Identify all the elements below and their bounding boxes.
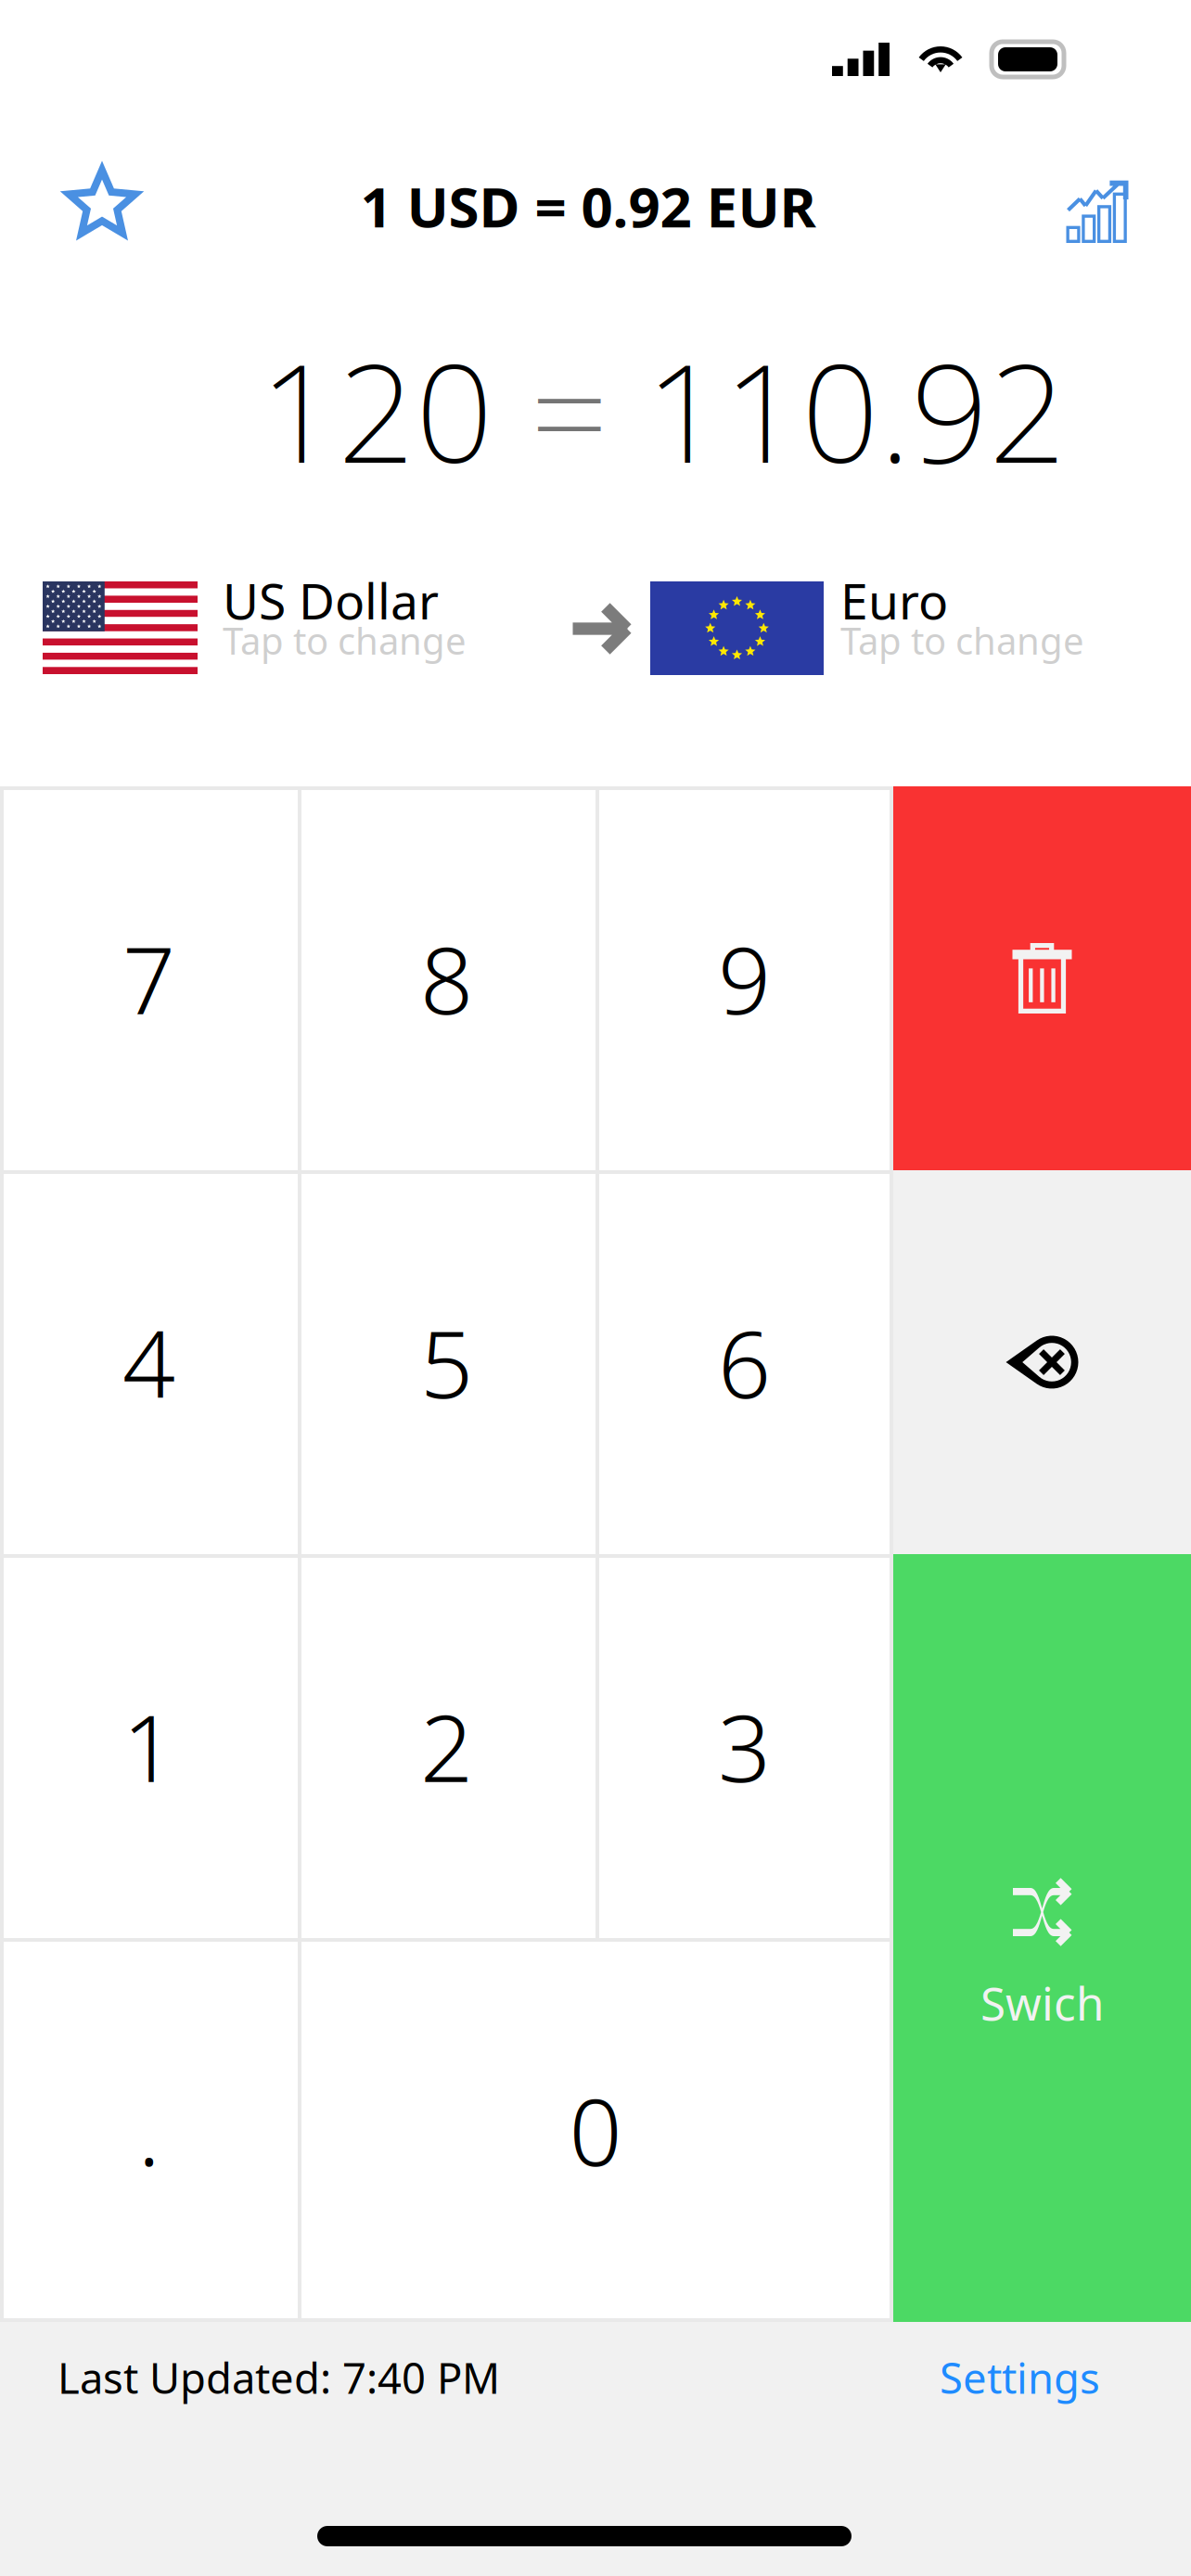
button[interactable]: 9 bbox=[595, 786, 893, 1170]
staticText: 2 bbox=[420, 1685, 473, 1808]
staticText: Swich bbox=[980, 1972, 1104, 2033]
staticText: 0 bbox=[569, 2068, 622, 2192]
staticText: 5 bbox=[420, 1301, 473, 1424]
staticText: Euro bbox=[840, 567, 948, 633]
button[interactable]: 7 bbox=[0, 786, 298, 1170]
staticText: 7 bbox=[122, 917, 175, 1040]
button[interactable]: Favourite bbox=[32, 134, 172, 275]
button[interactable]: 1 bbox=[0, 1554, 298, 1938]
button[interactable]: 4 bbox=[0, 1170, 298, 1554]
button[interactable]: . bbox=[0, 1938, 298, 2322]
button[interactable]: 0 bbox=[298, 1938, 893, 2322]
staticText: 8 bbox=[420, 917, 473, 1040]
button[interactable]: Euro bbox=[634, 549, 1175, 707]
staticText: . bbox=[138, 2068, 160, 2192]
staticText: 110.92 bbox=[646, 320, 1067, 500]
staticText: Tap to change bbox=[840, 616, 1084, 665]
button[interactable]: 6 bbox=[595, 1170, 893, 1554]
staticText: 120 bbox=[260, 320, 493, 500]
button[interactable]: 2 bbox=[298, 1554, 595, 1938]
staticText: Last Updated: 7:40 PM bbox=[58, 2350, 500, 2405]
button[interactable]: 3 bbox=[595, 1554, 893, 1938]
button[interactable]: US Dollar bbox=[0, 549, 516, 707]
staticText: US Dollar bbox=[223, 567, 439, 633]
staticText: Tap to change bbox=[223, 616, 467, 665]
button[interactable]: Settings bbox=[919, 2337, 1121, 2418]
staticText: 4 bbox=[122, 1301, 175, 1424]
button[interactable]: 8 bbox=[298, 786, 595, 1170]
button[interactable]: Delete bbox=[893, 1170, 1191, 1554]
staticText: 3 bbox=[718, 1685, 771, 1808]
staticText: Settings bbox=[940, 2350, 1100, 2405]
staticText: = bbox=[531, 320, 608, 500]
button[interactable]: Clear bbox=[893, 786, 1191, 1170]
button[interactable]: Rate history bbox=[1031, 145, 1164, 278]
staticText: 6 bbox=[718, 1301, 771, 1424]
staticText: 9 bbox=[718, 917, 771, 1040]
button[interactable]: Swich bbox=[893, 1554, 1191, 2322]
button[interactable]: 5 bbox=[298, 1170, 595, 1554]
staticText: 1 bbox=[122, 1685, 175, 1808]
staticText: 1 USD = 0.92 EUR bbox=[360, 169, 816, 243]
